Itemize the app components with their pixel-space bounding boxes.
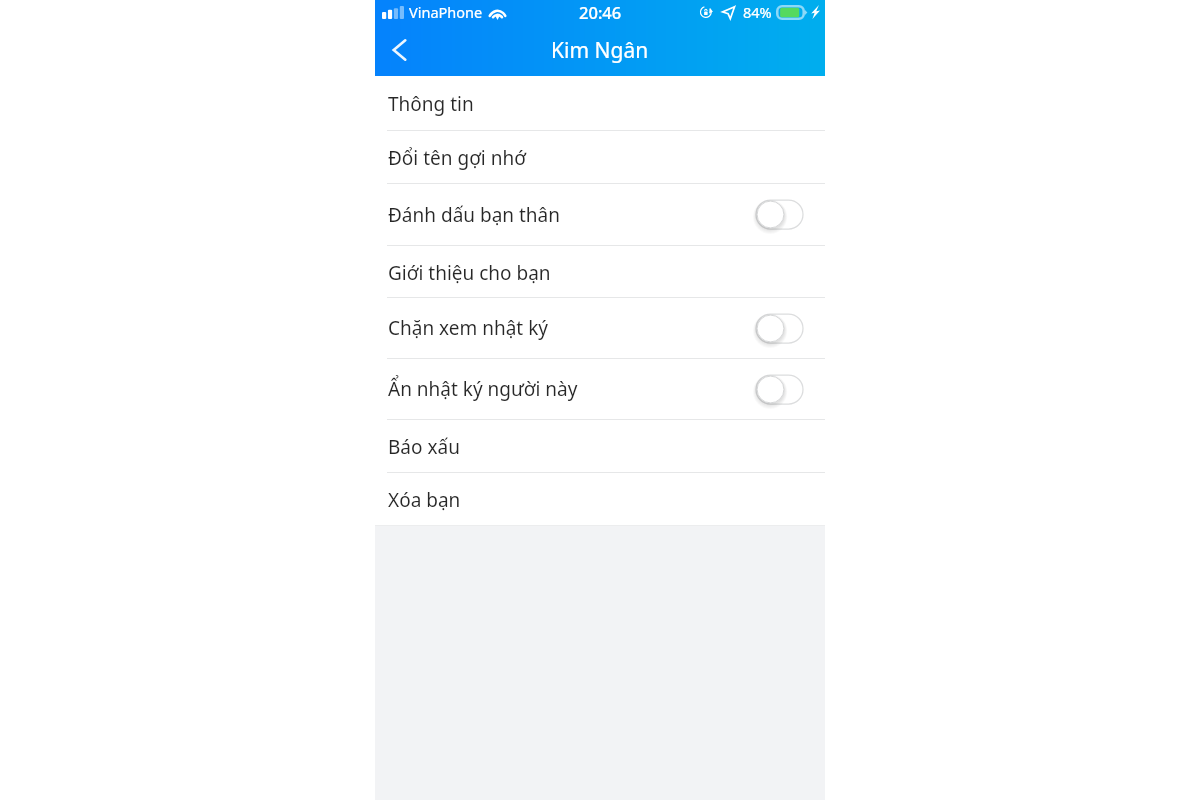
button[interactable]: Ẩn nhật ký người này xyxy=(375,359,825,420)
button[interactable]: Thông tin xyxy=(375,76,825,131)
button[interactable]: Giới thiệu cho bạn xyxy=(375,246,825,298)
staticText: 20:46 xyxy=(579,1,622,23)
button[interactable]: Báo xấu xyxy=(375,420,825,473)
staticText: Đổi tên gợi nhớ xyxy=(388,145,526,171)
staticText: 84% xyxy=(743,2,772,22)
button[interactable]: Chặn xem nhật ký xyxy=(375,298,825,359)
button[interactable]: Đánh dấu bạn thân xyxy=(375,184,825,246)
staticText: Kim Ngân xyxy=(551,36,649,65)
staticText: Báo xấu xyxy=(388,434,460,460)
staticText: Giới thiệu cho bạn xyxy=(388,260,551,286)
staticText: Ẩn nhật ký người này xyxy=(388,376,578,402)
button[interactable]: Chặn xem nhật ký xyxy=(753,310,803,347)
staticText: VinaPhone xyxy=(409,2,483,22)
staticText: Đánh dấu bạn thân xyxy=(388,202,561,228)
button[interactable]: Back xyxy=(375,24,425,76)
button[interactable]: Đổi tên gợi nhớ xyxy=(375,131,825,184)
staticText: Thông tin xyxy=(388,91,474,117)
button[interactable]: Ẩn nhật ký người này xyxy=(753,371,803,408)
button[interactable]: Xóa bạn xyxy=(375,473,825,526)
staticText: Xóa bạn xyxy=(388,487,461,513)
staticText: Chặn xem nhật ký xyxy=(388,315,548,341)
button[interactable]: Đánh dấu bạn thân xyxy=(753,196,803,233)
